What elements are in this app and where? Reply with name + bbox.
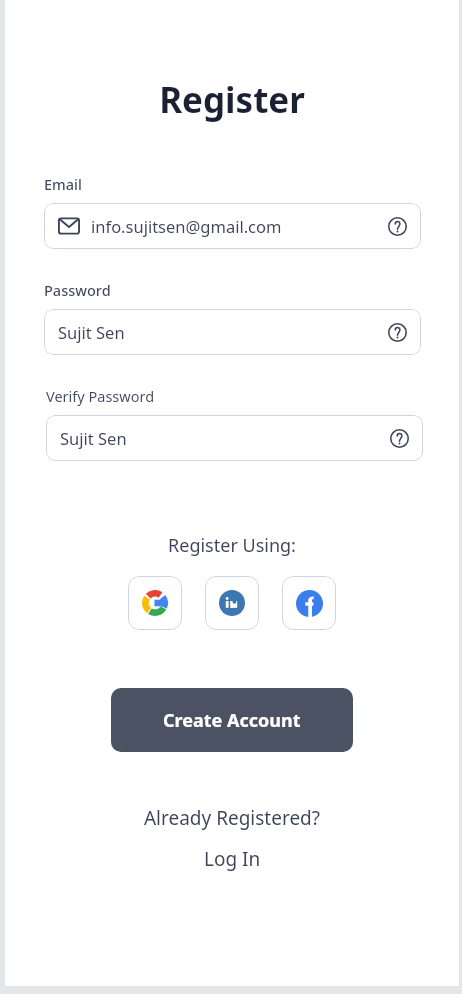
other: Help [390, 429, 409, 448]
staticText: Sujit Sen [58, 321, 388, 343]
button[interactable]: Register using Facebook [282, 576, 336, 630]
staticText: Email [44, 174, 82, 194]
staticText: Register Using: [5, 533, 459, 558]
button[interactable]: Create Account [111, 688, 353, 752]
staticText: Create Account [163, 708, 301, 733]
other: Help [388, 323, 407, 342]
button[interactable]: Log In [194, 843, 271, 875]
button[interactable]: info.sujitsen@gmail.com [44, 203, 421, 249]
button[interactable]: Sujit Sen [46, 415, 423, 461]
staticText: info.sujitsen@gmail.com [91, 215, 388, 237]
staticText: Verify Password [46, 386, 155, 406]
other: Help [388, 217, 407, 236]
button[interactable]: Sujit Sen [44, 309, 421, 355]
button[interactable]: Register using LinkedIn [205, 576, 259, 630]
staticText: Sujit Sen [60, 427, 390, 449]
button[interactable]: Register using Google [128, 576, 182, 630]
staticText: Already Registered? [5, 805, 459, 831]
staticText: Password [44, 280, 111, 300]
staticText: Register [5, 76, 459, 124]
